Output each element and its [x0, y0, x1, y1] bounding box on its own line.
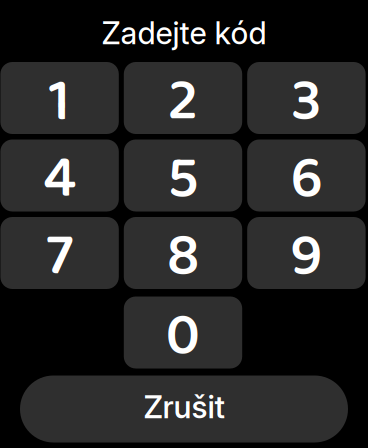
- staticText: 9: [290, 210, 323, 304]
- staticText: 2: [168, 55, 198, 149]
- staticText: Zadejte kód: [101, 14, 266, 51]
- button[interactable]: 5: [124, 139, 242, 211]
- button[interactable]: Zrušit: [20, 375, 348, 442]
- staticText: 6: [290, 132, 322, 226]
- staticText: 4: [43, 132, 76, 226]
- button[interactable]: 2: [124, 62, 242, 134]
- staticText: 0: [165, 289, 200, 383]
- staticText: 1: [49, 55, 71, 149]
- button[interactable]: 0: [124, 296, 242, 368]
- staticText: 3: [291, 55, 321, 149]
- button[interactable]: 8: [124, 217, 242, 289]
- button[interactable]: 1: [0, 62, 119, 134]
- staticText: 8: [166, 210, 199, 304]
- staticText: 7: [46, 210, 73, 304]
- button[interactable]: 6: [247, 139, 366, 211]
- staticText: 5: [167, 132, 198, 226]
- staticText: Zrušit: [143, 388, 224, 425]
- button[interactable]: 3: [247, 62, 366, 134]
- button[interactable]: 9: [247, 217, 366, 289]
- button[interactable]: 4: [0, 139, 119, 211]
- button[interactable]: 7: [0, 217, 119, 289]
